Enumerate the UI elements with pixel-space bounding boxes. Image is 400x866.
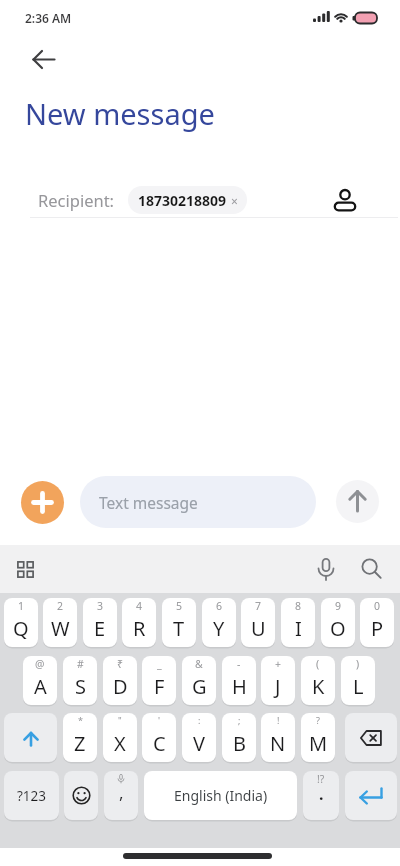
staticText: X [114, 730, 126, 757]
staticText: 3 [97, 599, 104, 613]
button[interactable]: . [303, 771, 339, 820]
staticText: C [153, 730, 166, 757]
staticText: * [78, 714, 83, 726]
button[interactable] [313, 553, 339, 585]
staticText: K [312, 673, 325, 700]
staticText: _ [157, 657, 162, 671]
staticText: Z [74, 730, 86, 757]
button[interactable]: N [261, 713, 295, 762]
button[interactable]: Y [202, 598, 236, 647]
staticText: G [192, 673, 207, 700]
button[interactable]: T [162, 598, 196, 647]
staticText: 5 [176, 599, 183, 613]
staticText: ! [277, 714, 280, 726]
staticText: T [173, 615, 185, 642]
staticText: E [94, 615, 106, 642]
staticText: F [154, 673, 165, 700]
button[interactable]: , [104, 771, 138, 820]
staticText: S [75, 673, 86, 700]
button[interactable]: I [281, 598, 315, 647]
button[interactable] [328, 182, 362, 216]
button[interactable] [24, 42, 64, 76]
staticText: " [118, 714, 122, 726]
staticText: 0 [374, 599, 381, 613]
button[interactable]: English (India) [144, 771, 297, 820]
button[interactable] [345, 771, 397, 820]
staticText: ₹ [117, 657, 124, 671]
staticText: ?123 [17, 787, 47, 805]
button[interactable]: G [182, 656, 216, 705]
staticText: U [251, 615, 266, 642]
staticText: # [77, 657, 84, 671]
staticText: M [309, 730, 328, 757]
button[interactable]: C [142, 713, 176, 762]
button[interactable]: X [103, 713, 137, 762]
button[interactable]: V [182, 713, 216, 762]
button[interactable]: E [83, 598, 117, 647]
staticText: 8 [295, 599, 302, 613]
button[interactable]: K [301, 656, 335, 705]
button[interactable]: ?123 [4, 771, 59, 820]
button[interactable]: 18730218809 [128, 186, 247, 214]
staticText: 1 [18, 599, 25, 613]
staticText: + [275, 657, 282, 671]
staticText: & [195, 657, 203, 671]
staticText: English (India) [174, 786, 268, 805]
staticText: : [198, 714, 201, 726]
button[interactable]: P [360, 598, 394, 647]
staticText: × [231, 193, 238, 209]
button[interactable] [64, 771, 98, 820]
staticText: !? [317, 772, 325, 786]
staticText: N [270, 730, 286, 757]
staticText: 4 [136, 599, 143, 613]
staticText: New message [25, 94, 215, 133]
button[interactable]: D [103, 656, 137, 705]
button[interactable]: Text message [80, 476, 316, 528]
staticText: 9 [335, 599, 342, 613]
staticText: J [275, 673, 281, 700]
staticText: I [295, 615, 302, 642]
button[interactable]: H [222, 656, 256, 705]
staticText: @ [35, 657, 45, 671]
staticText: , [119, 781, 124, 804]
button[interactable]: S [63, 656, 97, 705]
staticText: P [371, 615, 384, 642]
staticText: 18730218809 [138, 191, 227, 210]
button[interactable]: Z [63, 713, 97, 762]
staticText: R [133, 615, 146, 642]
staticText: D [113, 673, 128, 700]
staticText: ) [356, 657, 360, 671]
staticText: L [353, 673, 364, 700]
staticText: B [233, 730, 246, 757]
button[interactable]: W [43, 598, 77, 647]
staticText: 2 [57, 599, 64, 613]
button[interactable]: J [261, 656, 295, 705]
button[interactable] [345, 713, 397, 762]
button[interactable]: B [222, 713, 256, 762]
button[interactable]: Q [4, 598, 38, 647]
staticText: 7 [255, 599, 262, 613]
button[interactable]: R [122, 598, 156, 647]
button[interactable]: F [142, 656, 176, 705]
button[interactable]: U [241, 598, 275, 647]
staticText: O [330, 615, 346, 642]
button[interactable]: L [341, 656, 375, 705]
staticText: ( [316, 657, 320, 671]
staticText: V [193, 730, 205, 757]
button[interactable] [21, 481, 64, 524]
staticText: Y [213, 615, 225, 642]
staticText: A [34, 673, 47, 700]
button[interactable] [10, 554, 40, 584]
button[interactable] [4, 713, 57, 762]
staticText: Recipient: [38, 189, 115, 211]
staticText: - [237, 657, 241, 671]
staticText: ? [316, 714, 320, 726]
button[interactable] [357, 553, 387, 585]
button[interactable]: O [321, 598, 355, 647]
button[interactable]: A [23, 656, 57, 705]
button[interactable] [336, 480, 379, 523]
staticText: Q [13, 615, 29, 642]
staticText: Text message [99, 492, 198, 513]
button[interactable]: M [301, 713, 335, 762]
staticText: H [232, 673, 247, 700]
